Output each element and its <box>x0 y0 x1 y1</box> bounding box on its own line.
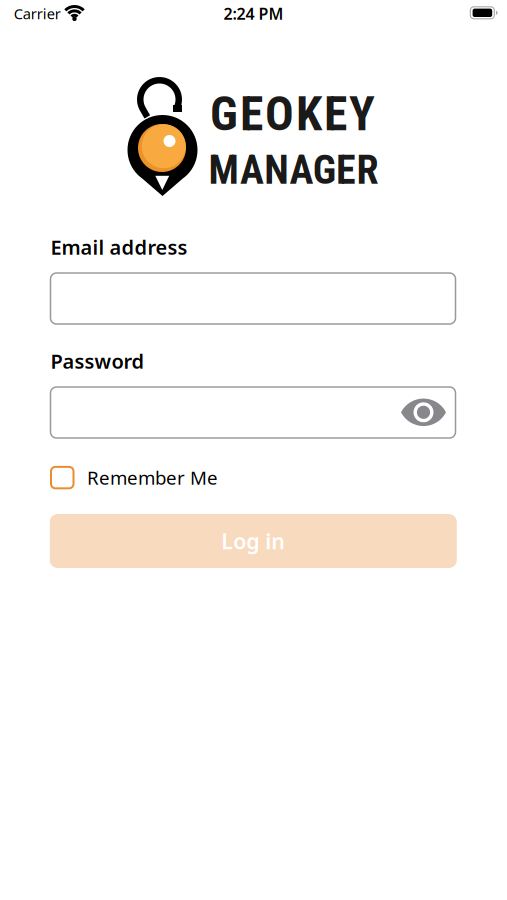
staticText: GEOKEY <box>210 86 375 142</box>
staticText: Email address <box>50 234 187 260</box>
staticText: Password <box>50 348 144 374</box>
staticText: Remember Me <box>87 465 218 490</box>
button[interactable] <box>50 387 455 438</box>
button[interactable] <box>50 273 455 324</box>
button[interactable]: Log in <box>50 514 457 568</box>
staticText: 2:24 PM <box>223 3 283 24</box>
button[interactable] <box>401 399 446 426</box>
button[interactable]: Remember Me <box>51 465 218 490</box>
staticText: MANAGER <box>209 147 378 193</box>
staticText: Log in <box>221 527 285 555</box>
staticText: Carrier <box>14 4 61 23</box>
